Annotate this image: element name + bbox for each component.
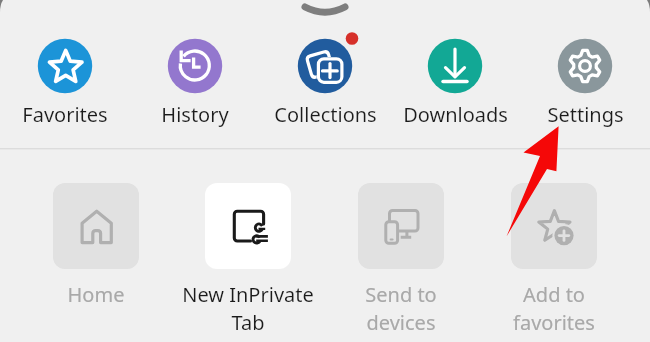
staticText: Downloads [403,101,508,128]
button[interactable]: New InPrivate Tab [172,183,324,336]
staticText: Favorites [22,101,108,128]
button[interactable]: Home [20,183,172,308]
button[interactable]: Send to devices [324,183,477,336]
button[interactable]: Settings [520,0,650,128]
button[interactable]: Downloads [390,0,520,128]
button[interactable]: History [130,0,260,128]
staticText: Add to favorites [506,281,602,336]
staticText: History [161,101,229,128]
staticText: Collections [274,101,377,128]
staticText: Settings [547,101,624,128]
staticText: New InPrivate Tab [181,281,315,336]
button[interactable]: Collections [260,0,390,128]
button[interactable]: Favorites [0,0,130,128]
staticText: Send to devices [353,281,449,336]
staticText: Home [31,281,161,308]
button[interactable]: Add to favorites [477,183,630,336]
